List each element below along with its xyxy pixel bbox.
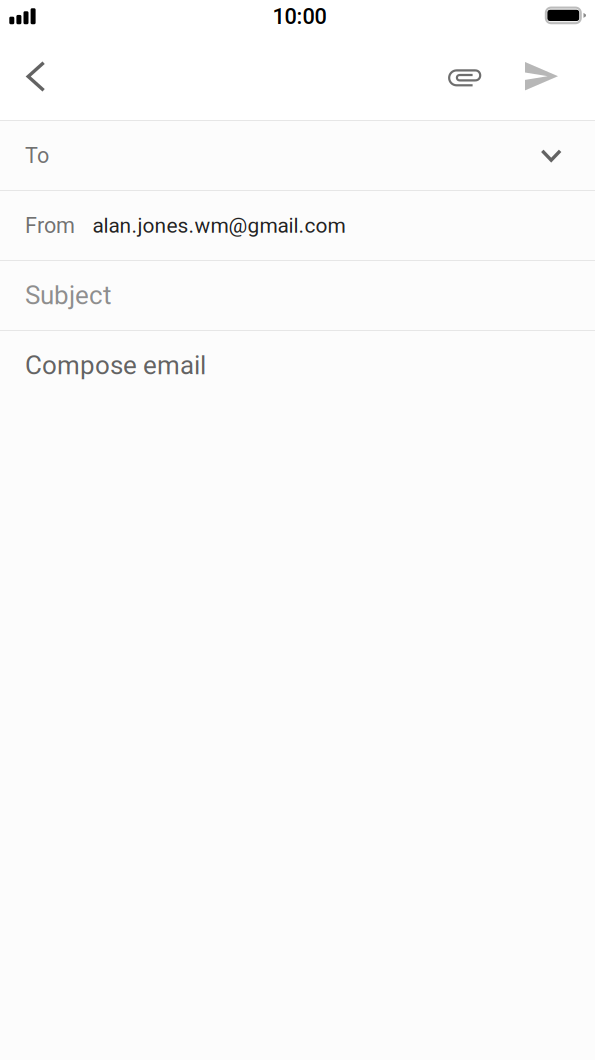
button[interactable]: From bbox=[0, 191, 595, 260]
staticText: From bbox=[25, 213, 75, 238]
staticText: Subject bbox=[25, 280, 111, 311]
button[interactable]: Send bbox=[500, 38, 595, 120]
staticText: Compose email bbox=[25, 350, 206, 381]
button[interactable]: Attach file bbox=[423, 38, 500, 120]
staticText: alan.jones.wm@gmail.com bbox=[92, 213, 345, 238]
staticText: 10:00 bbox=[272, 4, 326, 29]
button[interactable]: Subject bbox=[0, 261, 595, 330]
button[interactable]: Back bbox=[0, 38, 64, 120]
button[interactable]: Compose email bbox=[0, 331, 595, 1060]
button[interactable]: To bbox=[0, 121, 595, 190]
staticText: To bbox=[25, 143, 49, 168]
